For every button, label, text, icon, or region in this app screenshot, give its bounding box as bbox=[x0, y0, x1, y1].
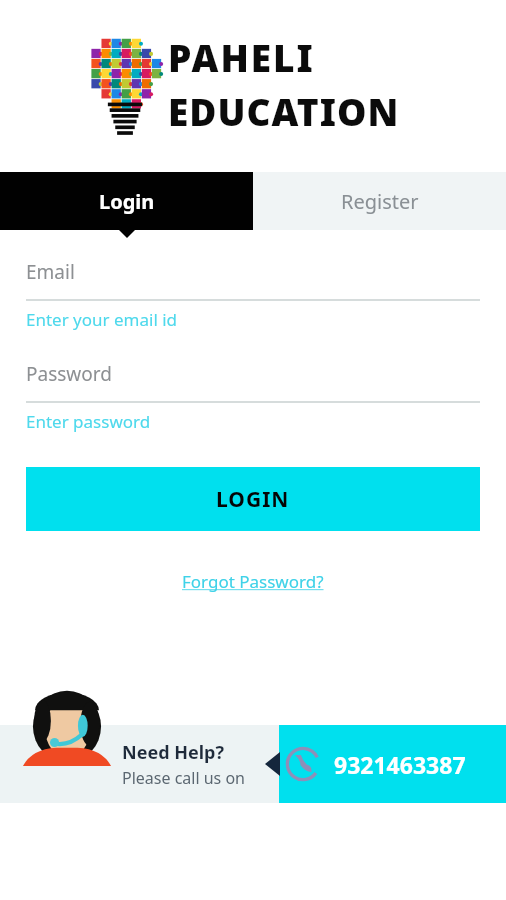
staticText: EDUCATION bbox=[168, 86, 400, 136]
button[interactable]: Forgot Password? bbox=[176, 564, 330, 599]
staticText: Login bbox=[99, 188, 155, 215]
staticText: Register bbox=[341, 188, 419, 215]
staticText: Enter password bbox=[26, 410, 151, 433]
button[interactable]: Email bbox=[0, 259, 506, 331]
staticText: Email bbox=[26, 259, 75, 285]
staticText: PAHELI bbox=[168, 32, 424, 82]
button[interactable]: Register bbox=[253, 172, 506, 230]
staticText: Enter your email id bbox=[26, 308, 178, 331]
staticText: Forgot Password? bbox=[182, 570, 324, 593]
button[interactable]: Call 9321463387 bbox=[279, 725, 506, 803]
button[interactable]: Login bbox=[0, 172, 253, 230]
staticText: Please call us on bbox=[122, 767, 246, 789]
staticText: 9321463387 bbox=[334, 749, 466, 780]
button[interactable]: LOGIN bbox=[26, 467, 480, 531]
staticText: Password bbox=[26, 361, 112, 387]
staticText: LOGIN bbox=[216, 485, 290, 514]
staticText: Need Help? bbox=[122, 740, 225, 765]
button[interactable]: Password bbox=[0, 361, 506, 433]
